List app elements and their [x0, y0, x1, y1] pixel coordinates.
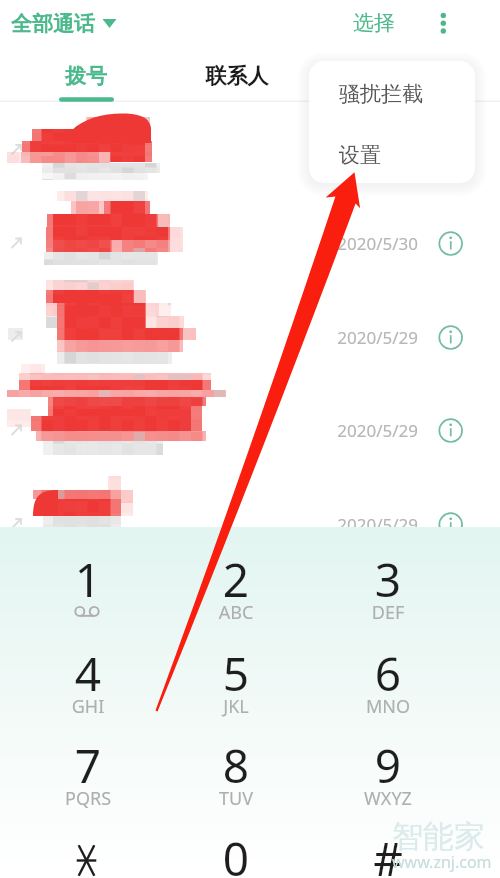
staticText: 2020/5/30 — [318, 232, 418, 255]
staticText: 2020/5/29 — [318, 513, 418, 536]
button[interactable]: 联系人 — [191, 54, 283, 100]
button[interactable]: 3 — [326, 540, 450, 626]
staticText: 3 — [326, 548, 450, 611]
staticText: 设置 — [339, 142, 381, 168]
staticText: # — [326, 827, 450, 878]
button[interactable]: 9 — [326, 726, 450, 812]
staticText: 5 — [174, 642, 298, 705]
staticText: 智能家 — [392, 817, 485, 856]
button[interactable] — [0, 478, 500, 571]
button[interactable]: Call details — [433, 413, 468, 448]
staticText: GHI — [26, 694, 150, 719]
button[interactable]: 2 — [174, 540, 298, 626]
staticText: 拨号 — [40, 63, 132, 89]
staticText: PQRS — [26, 786, 150, 811]
staticText: 联系人 — [191, 63, 283, 89]
staticText: JKL — [174, 694, 298, 719]
staticText: 6 — [326, 642, 450, 705]
button[interactable]: 全部通话 — [6, 4, 120, 42]
staticText: ABC — [174, 600, 298, 625]
button[interactable]: 选择 — [346, 4, 404, 42]
staticText: 4 — [26, 642, 150, 705]
button[interactable]: Call details — [433, 226, 468, 261]
button[interactable]: 7 — [26, 726, 150, 812]
button[interactable] — [0, 104, 500, 197]
staticText: WXYZ — [326, 786, 450, 811]
staticText: 1 — [26, 548, 150, 611]
button[interactable]: 拨号 — [40, 54, 132, 100]
staticText: www.znj.com — [392, 851, 492, 873]
button[interactable]: 骚扰拦截 — [309, 61, 475, 122]
button[interactable]: 1 — [26, 540, 150, 626]
staticText: 2020/5/29 — [318, 419, 418, 442]
button[interactable]: 6 — [326, 634, 450, 720]
staticText: 选择 — [353, 10, 395, 36]
staticText: TUV — [174, 786, 298, 811]
staticText: 2020/5/29 — [318, 326, 418, 349]
button[interactable]: 4 — [26, 634, 150, 720]
staticText: 2020/5/30 — [318, 139, 418, 162]
staticText: 9 — [326, 734, 450, 797]
button[interactable] — [0, 384, 500, 477]
button[interactable] — [0, 197, 500, 290]
button[interactable]: 8 — [174, 726, 298, 812]
staticText: 骚扰拦截 — [339, 81, 423, 107]
staticText: MNO — [326, 694, 450, 719]
button[interactable]: 5 — [174, 634, 298, 720]
staticText: 8 — [174, 734, 298, 797]
button[interactable]: 0 — [174, 819, 298, 878]
button[interactable] — [26, 819, 150, 878]
staticText: 全部通话 — [11, 11, 95, 37]
staticText: 0 — [174, 827, 298, 878]
button[interactable] — [0, 291, 500, 384]
staticText: DEF — [326, 600, 450, 625]
button[interactable]: Call details — [433, 507, 468, 542]
button[interactable]: Call details — [433, 320, 468, 355]
button[interactable]: More options — [423, 3, 463, 45]
staticText: 7 — [26, 734, 150, 797]
button[interactable]: # — [326, 819, 450, 878]
button[interactable]: 设置 — [309, 122, 475, 183]
staticText: 2 — [174, 548, 298, 611]
